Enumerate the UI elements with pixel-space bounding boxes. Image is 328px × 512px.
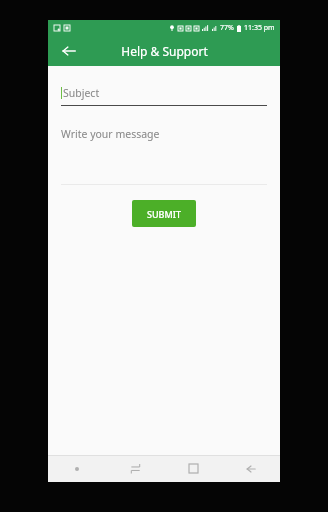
staticText: 77% [220, 23, 234, 33]
button[interactable]: Home [164, 455, 222, 482]
button[interactable]: Switch [106, 455, 164, 482]
staticText: Subject [63, 86, 100, 100]
button[interactable]: More options [48, 455, 106, 482]
staticText: SUBMIT [147, 208, 181, 220]
button[interactable]: SUBMIT [132, 200, 196, 227]
button[interactable]: Subject [61, 86, 267, 106]
button[interactable]: Back [222, 455, 280, 482]
staticText: Write your message [61, 127, 160, 141]
staticText: 11:35 pm [244, 23, 275, 33]
button[interactable]: Back [58, 40, 80, 62]
button[interactable]: Write your message [48, 127, 280, 184]
staticText: Help & Support [121, 43, 208, 59]
